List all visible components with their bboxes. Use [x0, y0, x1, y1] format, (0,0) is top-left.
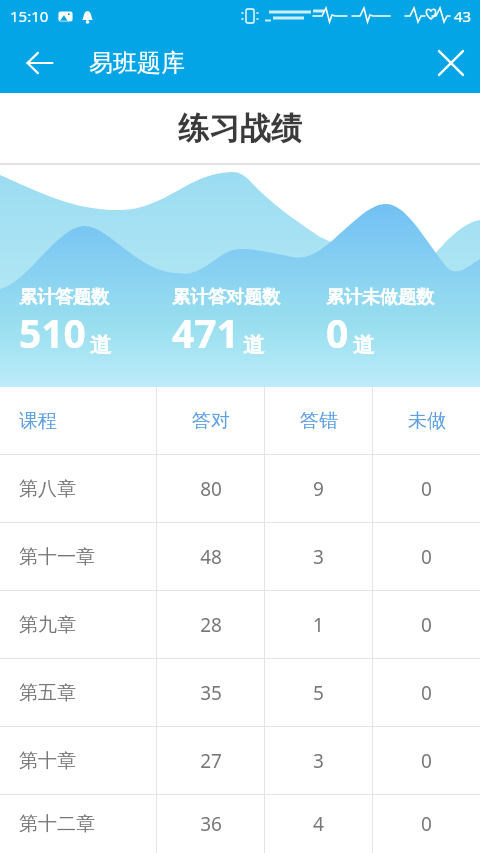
staticText: 累计未做题数 [326, 286, 434, 309]
staticText: 0 [326, 306, 349, 359]
staticText: 510 [19, 306, 86, 359]
staticText: 第八章 [19, 477, 76, 501]
staticText: 未做 [408, 409, 446, 433]
staticText: 累计答题数 [19, 286, 109, 309]
staticText: 0 [421, 748, 432, 774]
staticText: 累计答对题数 [172, 286, 280, 309]
staticText: 4 [313, 811, 324, 837]
staticText: 课程 [19, 409, 57, 433]
staticText: 0 [421, 612, 432, 638]
staticText: 3 [313, 748, 324, 774]
staticText: 第五章 [19, 681, 76, 705]
button[interactable]: 第五章 [0, 659, 480, 727]
staticText: 答对 [192, 409, 230, 433]
staticText: 道 [90, 332, 111, 358]
button[interactable]: 第十一章 [0, 523, 480, 591]
button[interactable]: Close [427, 39, 475, 87]
staticText: 第十一章 [19, 545, 95, 569]
staticText: 0 [421, 680, 432, 706]
staticText: 15:10 [10, 6, 49, 26]
staticText: 答错 [300, 409, 338, 433]
staticText: 5 [313, 680, 324, 706]
staticText: 35 [200, 680, 222, 706]
staticText: 0 [421, 476, 432, 502]
button[interactable]: 第九章 [0, 591, 480, 659]
staticText: 48 [200, 544, 222, 570]
staticText: 道 [243, 332, 264, 358]
staticText: 1 [313, 612, 324, 638]
staticText: 第十章 [19, 749, 76, 773]
staticText: 0 [421, 811, 432, 837]
button[interactable]: 第八章 [0, 455, 480, 523]
staticText: 0 [421, 544, 432, 570]
staticText: 471 [172, 306, 239, 359]
staticText: 28 [200, 612, 222, 638]
staticText: 27 [200, 748, 222, 774]
staticText: 9 [313, 476, 324, 502]
staticText: 36 [200, 811, 222, 837]
staticText: 易班题库 [89, 48, 185, 78]
staticText: 道 [353, 332, 374, 358]
button[interactable]: 课程 [0, 387, 480, 455]
staticText: 练习战绩 [178, 109, 302, 148]
staticText: 43 [454, 6, 472, 26]
staticText: 80 [200, 476, 222, 502]
button[interactable]: Back [16, 39, 64, 87]
button[interactable]: 第十二章 [0, 795, 480, 853]
staticText: 第十二章 [19, 812, 95, 836]
staticText: 第九章 [19, 613, 76, 637]
staticText: 3 [313, 544, 324, 570]
button[interactable]: 第十章 [0, 727, 480, 795]
